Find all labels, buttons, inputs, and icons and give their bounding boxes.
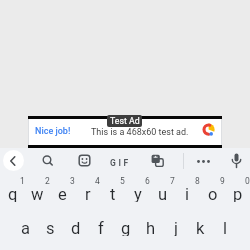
staticText: This is a 468x60 test ad. bbox=[91, 127, 189, 138]
staticText: w bbox=[31, 185, 44, 202]
staticText: Nice job! bbox=[35, 126, 71, 137]
button[interactable]: f bbox=[88, 219, 113, 236]
button[interactable]: g bbox=[113, 219, 138, 236]
staticText: h bbox=[146, 219, 156, 236]
button[interactable]: h bbox=[138, 219, 163, 236]
button[interactable]: i bbox=[175, 185, 200, 202]
staticText: a bbox=[21, 219, 30, 236]
button[interactable]: w bbox=[25, 185, 50, 202]
staticText: GIF bbox=[110, 158, 131, 168]
staticText: i bbox=[185, 185, 190, 202]
button[interactable]: y bbox=[125, 185, 150, 202]
staticText: q bbox=[8, 185, 18, 202]
staticText: 1 bbox=[20, 176, 25, 186]
staticText: 9 bbox=[220, 176, 225, 186]
staticText: u bbox=[158, 185, 168, 202]
button[interactable]: q bbox=[0, 185, 25, 202]
staticText: y bbox=[134, 185, 142, 202]
button[interactable] bbox=[226, 150, 247, 171]
staticText: 7 bbox=[170, 176, 175, 186]
button[interactable]: r bbox=[75, 185, 100, 202]
staticText: k bbox=[196, 219, 205, 236]
staticText: p bbox=[233, 185, 243, 202]
staticText: j bbox=[174, 219, 178, 236]
button[interactable]: t bbox=[100, 185, 125, 202]
staticText: t bbox=[110, 185, 116, 202]
button[interactable] bbox=[3, 150, 24, 171]
staticText: l bbox=[223, 219, 228, 236]
staticText: 4 bbox=[95, 176, 100, 186]
button[interactable] bbox=[37, 150, 58, 171]
staticText: 6 bbox=[145, 176, 150, 186]
staticText: 5 bbox=[120, 176, 125, 186]
button[interactable]: u bbox=[150, 185, 175, 202]
button[interactable]: p bbox=[225, 185, 250, 202]
button[interactable]: d bbox=[63, 219, 88, 236]
button[interactable]: o bbox=[200, 185, 225, 202]
staticText: 0 bbox=[245, 176, 250, 186]
button[interactable] bbox=[74, 150, 95, 171]
button[interactable]: s bbox=[38, 219, 63, 236]
staticText: s bbox=[46, 219, 55, 236]
staticText: 8 bbox=[195, 176, 200, 186]
button[interactable]: l bbox=[213, 219, 238, 236]
button[interactable] bbox=[147, 150, 168, 171]
staticText: 3 bbox=[70, 176, 75, 186]
staticText: 2 bbox=[45, 176, 50, 186]
staticText: e bbox=[58, 185, 67, 202]
staticText: f bbox=[98, 219, 104, 236]
staticText: o bbox=[208, 185, 218, 202]
button[interactable]: e bbox=[50, 185, 75, 202]
staticText: Test Ad bbox=[110, 116, 140, 126]
button[interactable] bbox=[28, 116, 222, 148]
staticText: r bbox=[85, 185, 91, 202]
button[interactable]: j bbox=[163, 219, 188, 236]
button[interactable]: a bbox=[13, 219, 38, 236]
staticText: g bbox=[121, 219, 131, 236]
staticText: d bbox=[71, 219, 81, 236]
button[interactable]: GIF bbox=[107, 152, 134, 173]
button[interactable]: k bbox=[188, 219, 213, 236]
button[interactable] bbox=[193, 150, 214, 171]
